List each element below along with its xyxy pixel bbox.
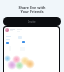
- staticText: Share Eve with Your Friends: [0, 5, 64, 15]
- button[interactable]: Invite: [3, 17, 61, 26]
- staticText: Invite: [28, 20, 36, 24]
